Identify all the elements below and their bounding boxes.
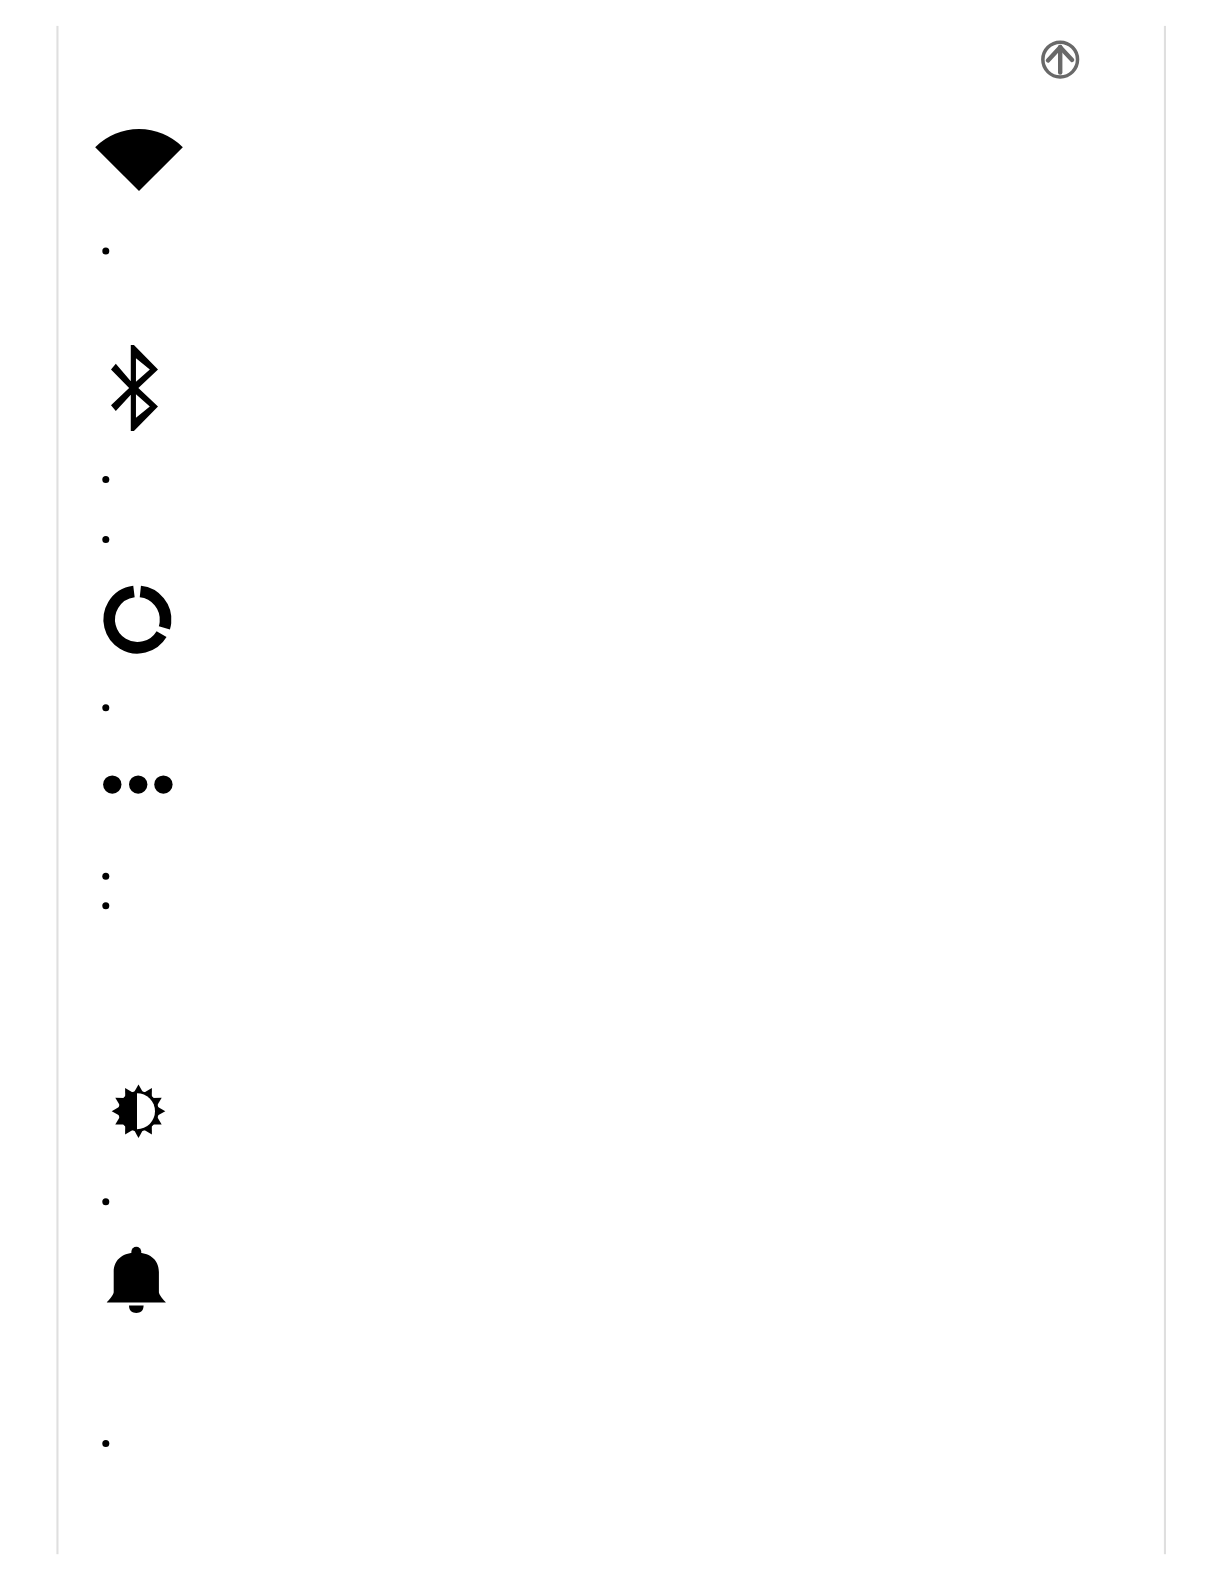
button[interactable]: Paired devices [0,462,1222,497]
button[interactable]: Account sync [0,690,1222,725]
button[interactable]: Wi‑Fi details [0,232,1222,270]
button[interactable]: Notifications [0,1238,1222,1324]
button[interactable]: Wi‑Fi [0,120,1222,208]
button[interactable]: Brightness [0,1070,1222,1154]
button[interactable]: Scroll to top [1031,30,1090,89]
button[interactable]: Storage [0,860,1222,892]
button[interactable]: Sync [0,578,1222,662]
button[interactable]: Device name [0,521,1222,556]
button[interactable]: Bluetooth [0,338,1222,438]
button[interactable]: Display timeout [0,1184,1222,1219]
button[interactable]: Battery [0,892,1222,924]
button[interactable]: More options [0,758,1222,812]
button[interactable]: About [0,1426,1222,1461]
